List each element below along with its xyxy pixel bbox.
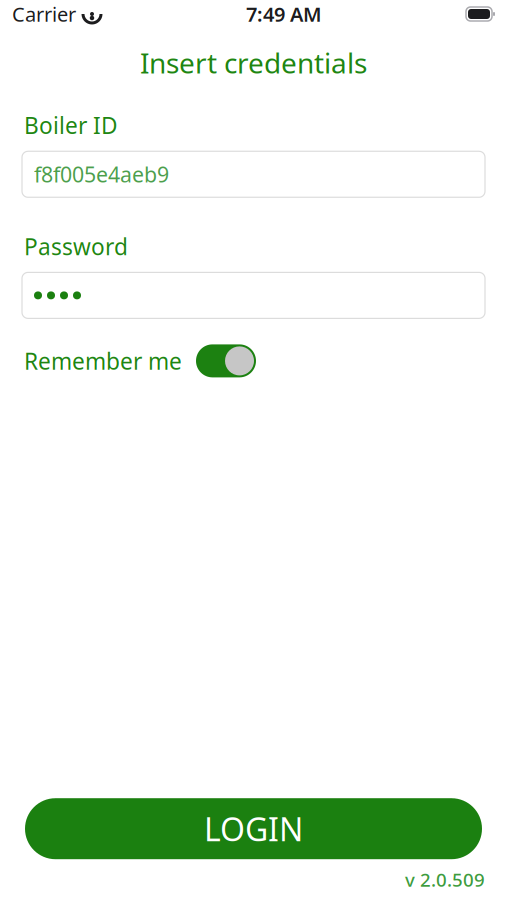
staticText: Carrier [12, 1, 76, 27]
staticText: f8f005e4aeb9 [34, 160, 169, 188]
staticText: LOGIN [204, 807, 303, 850]
staticText: Insert credentials [140, 44, 367, 81]
button[interactable]: Remember me [196, 344, 256, 377]
staticText: v 2.0.509 [405, 867, 485, 892]
staticText: 7:49 AM [246, 1, 322, 27]
button[interactable]: LOGIN [25, 798, 482, 859]
staticText: Boiler ID [24, 110, 118, 140]
staticText: Remember me [24, 346, 182, 376]
staticText: Password [24, 231, 128, 261]
